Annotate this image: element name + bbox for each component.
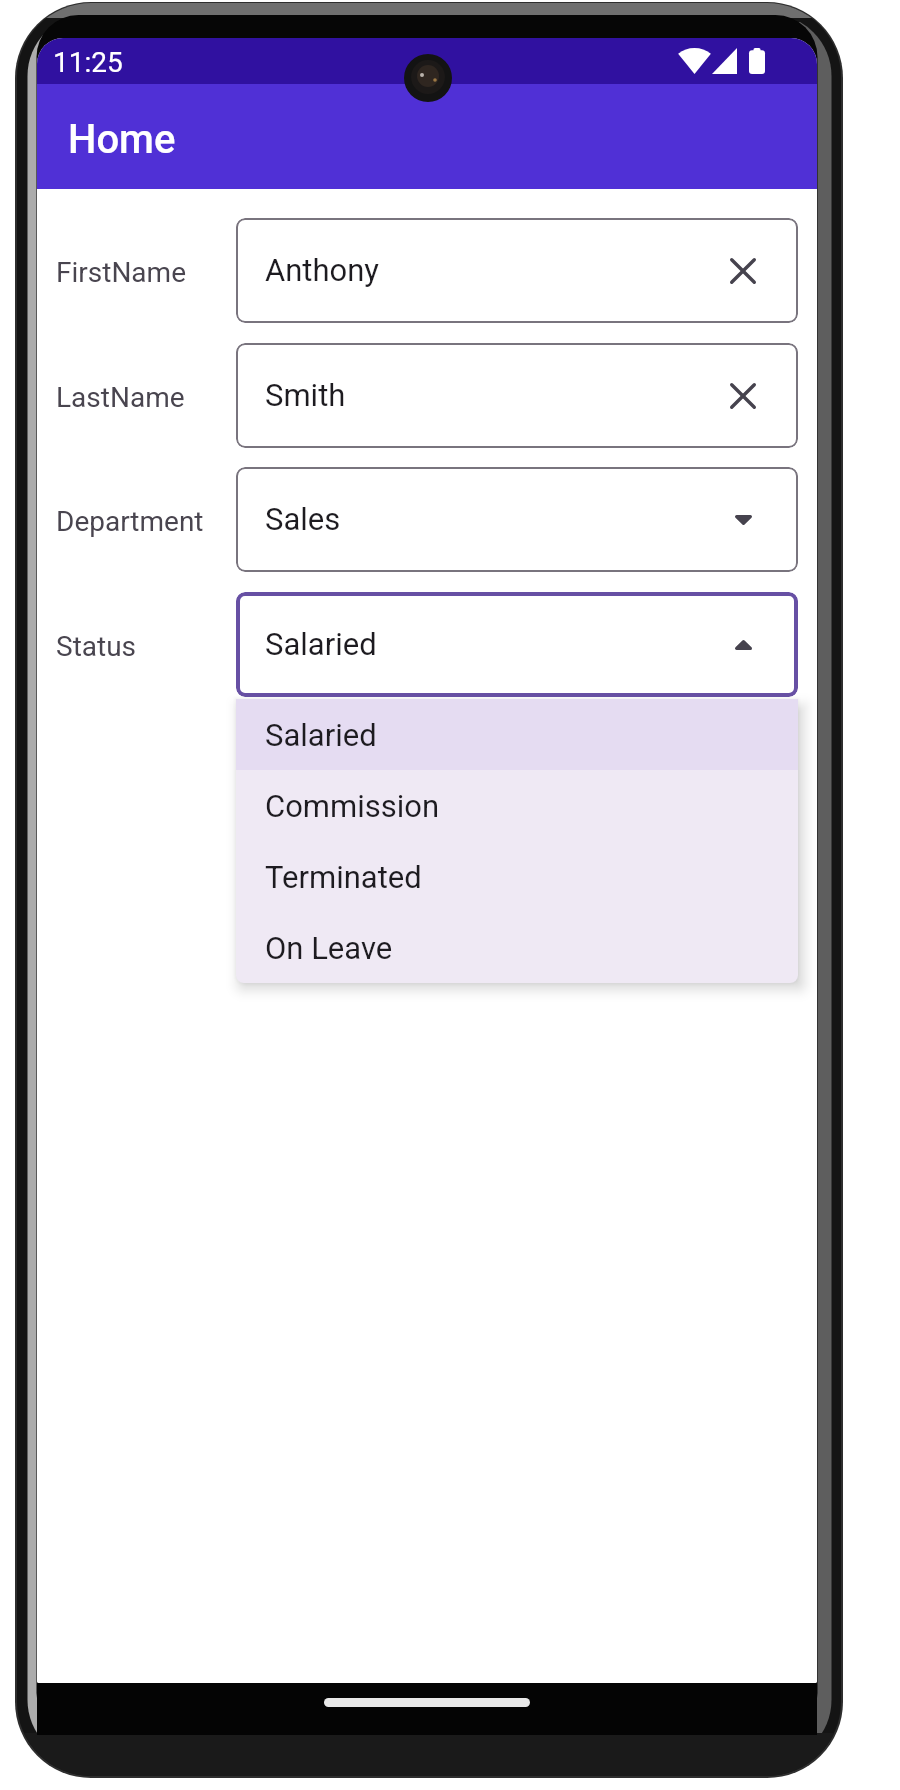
button[interactable]: Terminated xyxy=(236,841,798,912)
staticText: Home xyxy=(68,116,176,163)
button[interactable]: Smith xyxy=(236,343,798,448)
staticText: Smith xyxy=(265,377,346,413)
staticText: Commission xyxy=(265,788,440,824)
button[interactable]: Clear xyxy=(721,249,765,293)
button[interactable]: On Leave xyxy=(236,912,798,983)
staticText: On Leave xyxy=(265,930,393,966)
staticText: Department xyxy=(56,505,204,538)
button[interactable]: Commission xyxy=(236,770,798,841)
button[interactable]: Clear xyxy=(721,374,765,418)
button[interactable]: Toggle dropdown xyxy=(721,498,765,542)
button[interactable]: Sales xyxy=(236,467,798,572)
button[interactable]: Anthony xyxy=(236,218,798,323)
button[interactable]: Salaried xyxy=(236,699,798,770)
staticText: Status xyxy=(56,630,137,663)
button[interactable]: Toggle dropdown xyxy=(721,623,765,667)
staticText: Anthony xyxy=(265,252,380,288)
button[interactable]: Salaried xyxy=(236,592,798,697)
staticText: Terminated xyxy=(265,859,422,895)
staticText: Sales xyxy=(265,501,341,537)
staticText: 11:25 xyxy=(53,46,123,79)
staticText: Salaried xyxy=(265,717,377,753)
staticText: FirstName xyxy=(56,256,186,289)
staticText: LastName xyxy=(56,381,185,414)
staticText: Salaried xyxy=(265,626,377,662)
